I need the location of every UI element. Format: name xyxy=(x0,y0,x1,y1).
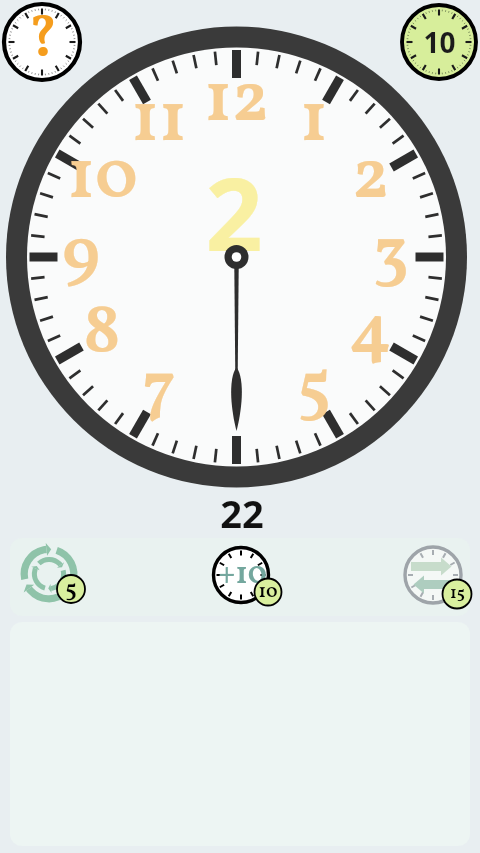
staticText: 10 xyxy=(423,23,456,61)
staticText: 3 xyxy=(373,208,409,306)
button[interactable] xyxy=(401,4,477,80)
staticText: 7 xyxy=(142,342,176,440)
staticText: 8 xyxy=(83,285,121,383)
staticText: 9 xyxy=(62,208,100,306)
button[interactable] xyxy=(400,544,474,606)
staticText: 2 xyxy=(352,130,389,228)
staticText: 2 xyxy=(205,144,263,280)
staticText: ? xyxy=(26,1,58,82)
staticText: 5 xyxy=(297,342,331,440)
button[interactable] xyxy=(18,544,88,606)
staticText: +10 xyxy=(218,553,267,596)
staticText: 4 xyxy=(349,285,392,383)
staticText: 10 xyxy=(67,130,138,228)
staticText: 22 xyxy=(220,487,264,539)
staticText: 12 xyxy=(204,53,269,151)
button[interactable] xyxy=(208,544,286,606)
staticText: 10 xyxy=(258,579,278,605)
staticText: 11 xyxy=(131,73,187,171)
button[interactable] xyxy=(4,4,82,82)
staticText: 15 xyxy=(450,582,465,606)
staticText: 5 xyxy=(65,573,77,606)
staticText: 1 xyxy=(300,73,328,171)
